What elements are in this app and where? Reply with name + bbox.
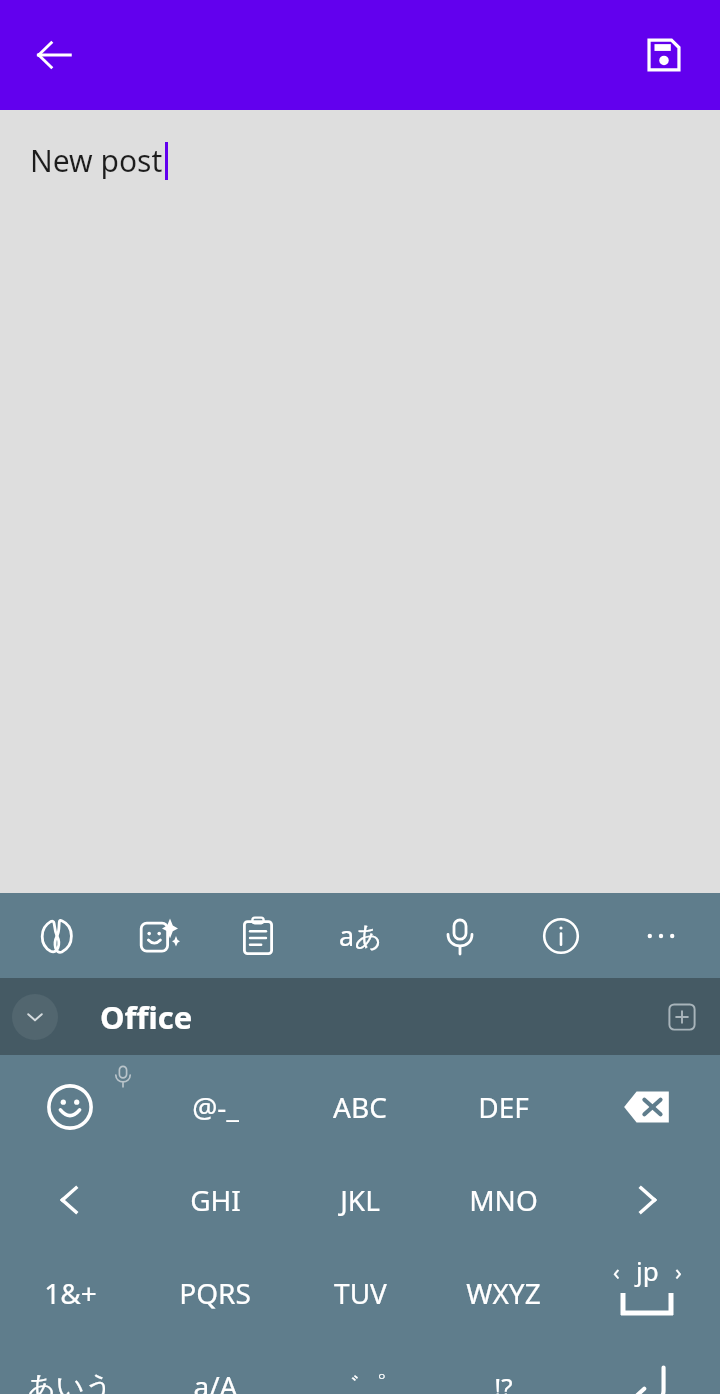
button[interactable]: PQRS [147,1247,283,1339]
button[interactable]: Voice input [426,893,494,978]
staticText: あいう [27,1369,113,1394]
button[interactable]: Stickers [124,893,192,978]
staticText: WXYZ [466,1274,541,1312]
staticText: a/A [193,1367,238,1394]
staticText: MNO [469,1181,538,1219]
button[interactable]: Voice [103,1056,143,1096]
staticText: ABC [333,1088,387,1126]
button[interactable]: Space [575,1247,719,1339]
button[interactable]: GHI [147,1154,283,1246]
button[interactable]: WXYZ [435,1247,571,1339]
button[interactable]: ゛゜ [292,1340,428,1394]
staticText: 1&+ [44,1274,97,1312]
button[interactable]: あいう [2,1340,138,1394]
staticText: aあ [339,917,382,954]
button[interactable]: MNO [435,1154,571,1246]
staticText: @-_ [192,1088,239,1126]
button[interactable]: Emoji [2,1061,138,1153]
staticText: GHI [190,1181,241,1219]
staticText: DEF [478,1088,529,1126]
button[interactable]: Collapse [12,994,58,1040]
button[interactable]: 1&+ [2,1247,138,1339]
button[interactable]: Language [326,893,394,978]
button[interactable]: TUV [292,1247,428,1339]
button[interactable]: Clipboard [224,893,292,978]
button[interactable]: a/A [147,1340,283,1394]
button[interactable]: Back [24,25,84,85]
button[interactable]: Add [658,993,706,1041]
button[interactable]: Cursor right [579,1154,715,1246]
button[interactable]: Info [527,893,595,978]
staticText: Office [100,996,193,1038]
staticText: TUV [334,1274,387,1312]
button[interactable]: Backspace [579,1061,715,1153]
staticText: PQRS [179,1274,251,1312]
button[interactable]: JKL [292,1154,428,1246]
button[interactable]: More options [627,893,695,978]
staticText: JKL [340,1181,380,1219]
staticText: ‹ [613,1256,620,1286]
button[interactable]: Save [634,25,694,85]
button[interactable]: DEF [435,1061,571,1153]
button[interactable]: Apps [23,893,91,978]
button[interactable]: @-_ [147,1061,283,1153]
button[interactable]: ABC [292,1061,428,1153]
staticText: !? [494,1369,513,1394]
staticText: jp [636,1253,659,1288]
staticText: ゛゜ [333,1370,387,1394]
staticText: › [675,1256,682,1286]
button[interactable]: Cursor left [2,1154,138,1246]
staticText: New post [30,140,163,181]
button[interactable]: Enter [579,1340,715,1394]
button[interactable]: !? [435,1340,571,1394]
